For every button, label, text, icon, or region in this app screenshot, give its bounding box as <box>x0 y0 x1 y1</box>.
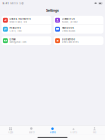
staticText: Email <box>9 38 16 41</box>
staticText: Search <box>28 131 34 134</box>
button[interactable]: Data & Numbers <box>2 16 51 25</box>
staticText: 9:41 <box>3 2 9 5</box>
button[interactable]: Apps <box>0 126 21 134</box>
button[interactable]: Home <box>42 126 63 134</box>
button[interactable]: Alerts <box>63 126 84 134</box>
staticText: Me <box>93 131 96 134</box>
staticText: Apps <box>8 131 13 134</box>
staticText: Mon 9 Sep <box>10 2 24 5</box>
button[interactable]: Features <box>2 25 51 34</box>
staticText: Alerts <box>70 131 77 134</box>
staticText: Subscribe <box>61 38 75 41</box>
staticText: Home <box>49 131 55 134</box>
button[interactable]: Facebook <box>54 25 103 34</box>
staticText: Data & Numbers <box>9 17 30 20</box>
button[interactable]: Subscribe <box>54 36 103 45</box>
button[interactable]: Classify Us <box>54 16 103 25</box>
staticText: Mobile data, SIM <box>9 21 27 23</box>
staticText: Classify Us <box>61 17 74 20</box>
button[interactable]: Me <box>84 126 105 134</box>
staticText: Linked account <box>61 30 75 32</box>
button[interactable]: Search <box>21 126 42 134</box>
staticText: News and offers <box>61 41 78 43</box>
button[interactable]: Email <box>2 36 51 45</box>
staticText: Calls, texts <box>9 30 22 32</box>
staticText: Account, privacy <box>61 21 77 23</box>
staticText: Facebook <box>61 26 73 29</box>
staticText: Settings <box>46 8 59 12</box>
staticText: Features <box>9 26 20 29</box>
staticText: name@mail.com <box>9 41 26 43</box>
